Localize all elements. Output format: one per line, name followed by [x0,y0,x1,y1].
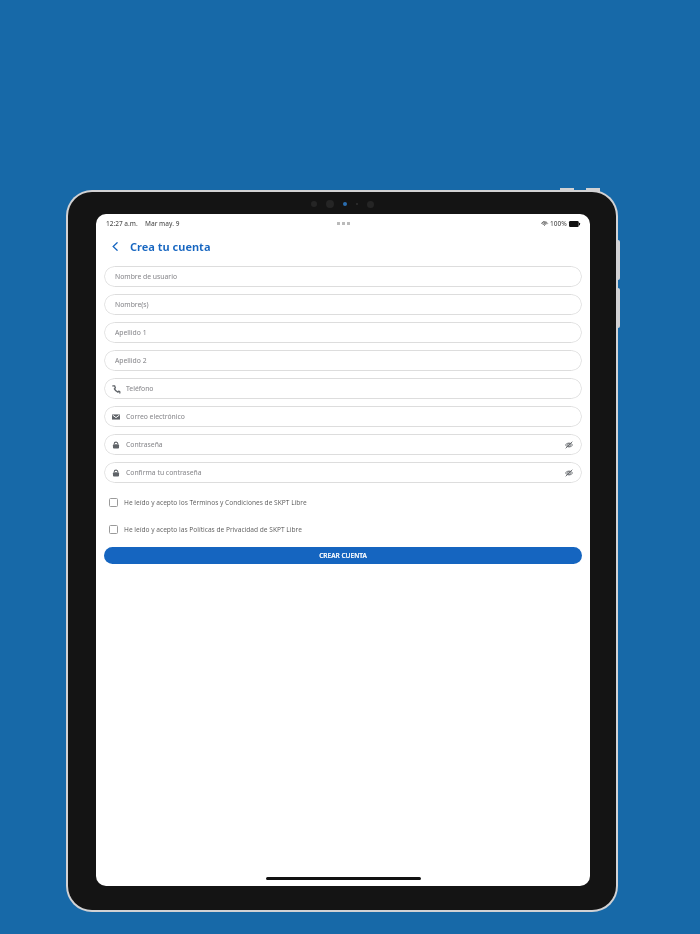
staticText: Nombre de usuario [115,272,178,281]
button[interactable]: He leído y acepto las Políticas de Priva… [104,523,582,536]
button[interactable]: He leído y acepto los Términos y Condici… [104,496,582,509]
staticText: Teléfono [126,384,154,393]
button[interactable]: Back [106,237,124,255]
staticText: He leído y acepto las Políticas de Priva… [124,525,302,534]
staticText: Apellido 2 [115,356,147,365]
staticText: Correo electrónico [126,412,185,421]
button[interactable]: Correo electrónico [104,406,582,427]
staticText: Confirma tu contraseña [126,468,202,477]
button[interactable]: CREAR CUENTA [104,547,582,564]
button[interactable]: Nombre(s) [104,294,582,315]
staticText: Apellido 1 [115,328,147,337]
staticText: 12:27 a.m. [106,219,138,228]
staticText: Contraseña [126,440,163,449]
staticText: Mar may. 9 [145,219,180,228]
button[interactable]: Nombre de usuario [104,266,582,287]
button[interactable]: Apellido 1 [104,322,582,343]
button[interactable]: Teléfono [104,378,582,399]
button[interactable]: Contraseña [104,434,582,455]
staticText: CREAR CUENTA [319,551,367,560]
staticText: He leído y acepto los Términos y Condici… [124,498,307,507]
button[interactable]: Confirma tu contraseña [104,462,582,483]
staticText: Nombre(s) [115,300,149,309]
staticText: Crea tu cuenta [130,239,211,254]
button[interactable]: Mostrar contraseña [563,467,574,478]
button[interactable]: Apellido 2 [104,350,582,371]
staticText: 100% [550,219,567,228]
button[interactable]: Mostrar contraseña [563,439,574,450]
